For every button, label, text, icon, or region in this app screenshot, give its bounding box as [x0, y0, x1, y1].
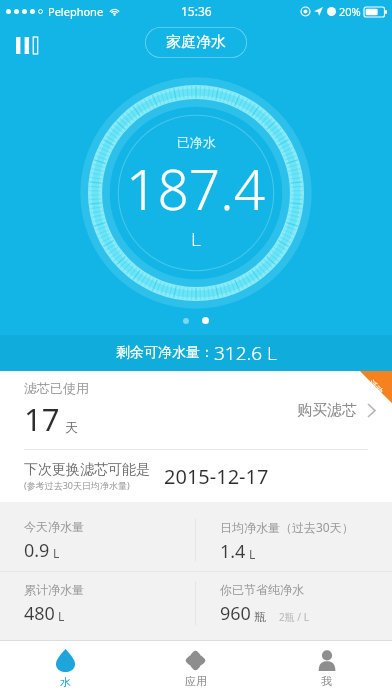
staticText: L	[58, 608, 65, 624]
staticText: 今天净水量	[24, 519, 84, 534]
staticText: 剩余可净水量：	[116, 344, 214, 362]
staticText: 累计净水量	[24, 582, 84, 597]
staticText: 滤芯已使用	[24, 380, 89, 396]
button[interactable]: 我	[261, 641, 392, 696]
button[interactable]: 家庭净水	[145, 27, 247, 58]
staticText: 2015-12-17	[164, 463, 269, 490]
staticText: 我	[321, 674, 332, 688]
button[interactable]: 日均净水量（过去30天）	[196, 509, 392, 564]
staticText: Pelephone	[48, 4, 104, 19]
button[interactable]: 水	[0, 641, 130, 696]
staticText: 187.4	[126, 151, 266, 226]
staticText: 0.9	[24, 538, 50, 563]
staticText: 你已节省纯净水	[220, 582, 304, 597]
staticText: 2瓶 / L	[279, 610, 309, 624]
staticText: L	[191, 226, 201, 252]
staticText: 15:36	[181, 3, 212, 19]
staticText: 瓶	[254, 609, 266, 624]
button[interactable]: 你已节省纯净水	[196, 572, 392, 626]
staticText: 购买滤芯	[297, 401, 357, 420]
staticText: 480	[24, 601, 55, 626]
button[interactable]: 应用	[130, 641, 261, 696]
staticText: 20%	[339, 4, 361, 19]
staticText: 312.6 L	[214, 340, 277, 366]
staticText: 家庭净水	[166, 33, 226, 52]
button[interactable]: 购买滤芯	[283, 389, 392, 432]
staticText: 下次更换滤芯可能是	[24, 461, 150, 479]
staticText: 活动	[367, 378, 385, 396]
staticText: L	[249, 546, 256, 562]
staticText: 960	[220, 601, 251, 626]
button[interactable]: 剩余可净水量：	[0, 335, 392, 371]
staticText: 水	[60, 675, 71, 689]
staticText: 17	[24, 398, 60, 440]
button[interactable]: 今天净水量	[0, 509, 195, 563]
staticText: 日均净水量（过去30天）	[220, 519, 354, 535]
staticText: 1.4	[220, 539, 246, 564]
staticText: (参考过去30天日均净水量)	[24, 479, 130, 491]
button[interactable]: Menu	[8, 26, 46, 64]
button[interactable]: 累计净水量	[0, 572, 195, 626]
staticText: 应用	[185, 674, 207, 688]
staticText: L	[53, 545, 60, 561]
staticText: 已净水	[177, 134, 216, 150]
staticText: 天	[65, 419, 78, 435]
button[interactable]: 下次更换滤芯可能是	[0, 450, 392, 502]
